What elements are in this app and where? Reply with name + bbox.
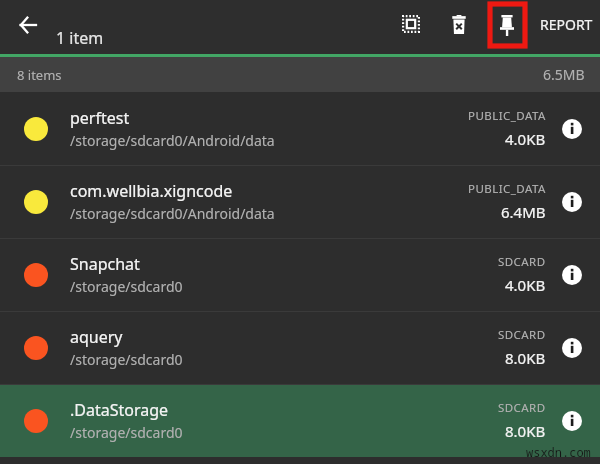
staticText: PUBLIC_DATA [468, 181, 546, 197]
staticText: com.wellbia.xigncode [70, 180, 233, 202]
button[interactable]: Info [552, 182, 592, 222]
staticText: SDCARD [498, 400, 546, 416]
button[interactable]: Pin [490, 4, 525, 46]
staticText: perftest [70, 107, 130, 129]
staticText: 8.0KB [505, 348, 546, 368]
staticText: 6.4MB [501, 202, 546, 222]
staticText: SDCARD [498, 327, 546, 343]
staticText: 4.0KB [505, 275, 546, 295]
staticText: 6.5MB [543, 65, 585, 84]
button[interactable]: Info [552, 109, 592, 149]
staticText: .DataStorage [70, 399, 169, 421]
staticText: /storage/sdcard0/Android/data [70, 204, 275, 223]
button[interactable]: Select all [389, 2, 433, 46]
staticText: PUBLIC_DATA [468, 108, 546, 124]
staticText: REPORT [540, 15, 593, 34]
staticText: 8.0KB [505, 421, 546, 441]
staticText: /storage/sdcard0 [70, 277, 183, 296]
staticText: SDCARD [498, 254, 546, 270]
button[interactable]: Info [552, 401, 592, 441]
button[interactable]: REPORT [533, 4, 600, 44]
staticText: wsxdn.com [526, 444, 591, 460]
staticText: /storage/sdcard0/Android/data [70, 131, 275, 150]
staticText: 4.0KB [505, 129, 546, 149]
button[interactable]: Back [6, 3, 50, 47]
staticText: 8 items [17, 66, 62, 84]
button[interactable]: Delete [437, 2, 481, 46]
button[interactable]: Info [552, 328, 592, 368]
button[interactable]: com.wellbia.xigncode [0, 165, 600, 238]
button[interactable]: Info [552, 255, 592, 295]
button[interactable]: perftest [0, 92, 600, 165]
staticText: 1 item [56, 27, 104, 49]
staticText: /storage/sdcard0 [70, 423, 183, 442]
staticText: /storage/sdcard0 [70, 350, 183, 369]
button[interactable]: .DataStorage [0, 384, 600, 457]
staticText: Snapchat [70, 253, 140, 275]
staticText: aquery [70, 326, 123, 348]
button[interactable]: Snapchat [0, 238, 600, 311]
button[interactable]: aquery [0, 311, 600, 384]
